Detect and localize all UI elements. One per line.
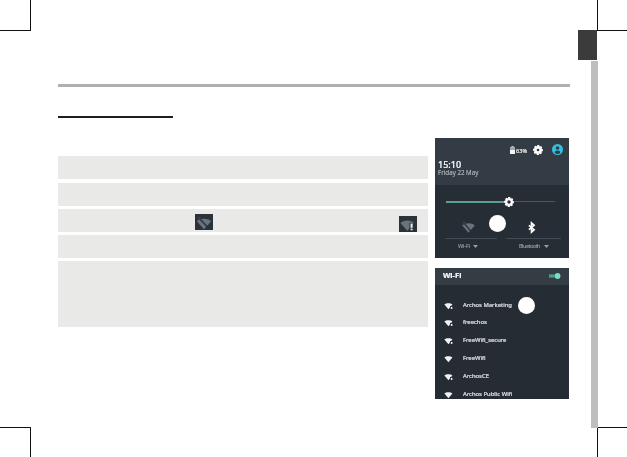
staticText: FreeWifi_secure: [463, 336, 507, 344]
button[interactable]: [58, 209, 428, 232]
staticText: 15:10: [438, 158, 462, 170]
staticText: Wi-Fi: [443, 270, 462, 280]
staticText: Archos Marketing: [463, 301, 512, 309]
button[interactable]: User account: [552, 144, 563, 155]
button[interactable]: Wi-Fi: [458, 242, 478, 250]
staticText: 63%: [516, 147, 528, 155]
button[interactable]: Settings: [533, 145, 543, 155]
button[interactable]: Wi-Fi disabled status icon: [195, 214, 213, 230]
staticText: Archos Public Wifi: [463, 390, 513, 398]
button[interactable]: Wi-Fi toggle: [549, 272, 560, 280]
button[interactable]: Archos Public Wifi: [435, 385, 569, 403]
button[interactable]: freechos: [435, 313, 569, 331]
button[interactable]: Wi-Fi: [435, 268, 569, 285]
staticText: freechos: [463, 318, 487, 326]
button[interactable]: Bluetooth: [519, 242, 549, 250]
staticText: Wi-Fi: [458, 242, 470, 250]
button[interactable]: Brightness: [504, 197, 514, 207]
staticText: ArchosCE: [463, 372, 489, 380]
button[interactable]: FreeWifi_secure: [435, 331, 569, 349]
button[interactable]: Archos Marketing: [435, 296, 569, 314]
button[interactable]: [489, 215, 506, 232]
staticText: Friday 22 May: [438, 168, 479, 176]
staticText: FreeWifi: [463, 354, 486, 362]
button[interactable]: ArchosCE: [435, 367, 569, 385]
button[interactable]: Bluetooth: [526, 222, 537, 233]
button[interactable]: FreeWifi: [435, 349, 569, 367]
button[interactable]: Wi-Fi off: [462, 220, 475, 233]
staticText: Bluetooth: [519, 242, 541, 250]
button[interactable]: Wi-Fi no-internet status icon: [399, 216, 417, 232]
